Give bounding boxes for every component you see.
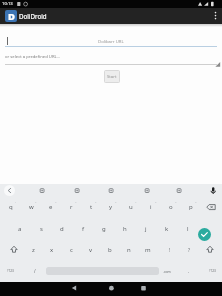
staticText: s <box>40 225 43 233</box>
staticText: ? <box>188 247 190 253</box>
staticText: q <box>9 203 13 211</box>
button[interactable]: ?123 <box>203 265 221 277</box>
button[interactable]: u <box>122 201 140 213</box>
button[interactable]: / <box>26 265 44 277</box>
staticText: z <box>32 246 35 254</box>
button[interactable] <box>204 201 219 213</box>
staticText: ! <box>169 247 171 253</box>
button[interactable]: r <box>62 201 80 213</box>
button[interactable]: w <box>22 201 40 213</box>
staticText: 7 <box>135 200 137 203</box>
staticText: DoliDroid <box>19 12 47 20</box>
button[interactable]: Start <box>104 70 120 83</box>
staticText: o <box>169 203 173 211</box>
staticText: u <box>129 203 133 211</box>
button[interactable]: i <box>142 201 160 213</box>
button[interactable]: q <box>2 201 20 213</box>
button[interactable]: y <box>102 201 120 213</box>
button[interactable] <box>36 185 48 196</box>
button[interactable]: ? <box>180 244 198 256</box>
staticText: p <box>189 203 193 211</box>
staticText: 0 <box>195 200 197 203</box>
staticText: 5 <box>95 200 97 203</box>
staticText: r <box>70 203 73 211</box>
button[interactable]: d <box>53 223 71 235</box>
staticText: h <box>123 225 127 233</box>
button[interactable]: p <box>182 201 200 213</box>
button[interactable]: or select a predefined URL... <box>4 52 218 66</box>
staticText: ?123 <box>209 269 216 273</box>
staticText: 2 <box>35 200 37 203</box>
button[interactable]: b <box>101 244 119 256</box>
staticText: 4 <box>75 200 77 203</box>
staticText: y <box>109 203 113 211</box>
staticText: w <box>29 203 34 211</box>
button[interactable] <box>135 282 151 296</box>
button[interactable]: o <box>162 201 180 213</box>
button[interactable]: g <box>95 223 113 235</box>
staticText: 3 <box>55 200 57 203</box>
staticText: g <box>102 225 106 233</box>
button[interactable]: ! <box>161 244 179 256</box>
staticText: c <box>70 246 73 254</box>
button[interactable] <box>71 185 83 196</box>
staticText: / <box>34 268 36 274</box>
button[interactable]: x <box>43 244 61 256</box>
button[interactable]: k <box>158 223 176 235</box>
staticText: .com <box>163 269 171 274</box>
button[interactable]: c <box>62 244 80 256</box>
button[interactable] <box>202 244 218 256</box>
staticText: d <box>60 225 64 233</box>
button[interactable] <box>4 185 15 196</box>
staticText: . <box>188 268 190 274</box>
staticText: 8 <box>155 200 157 203</box>
button[interactable]: z <box>24 244 42 256</box>
button[interactable]: n <box>120 244 138 256</box>
button[interactable]: h <box>116 223 134 235</box>
staticText: j <box>145 225 147 233</box>
button[interactable]: s <box>32 223 50 235</box>
staticText: ?123 <box>7 269 14 273</box>
staticText: Start <box>107 74 117 80</box>
staticText: n <box>127 246 131 254</box>
button[interactable] <box>207 185 219 196</box>
button[interactable] <box>141 185 153 196</box>
staticText: 10:13 <box>2 1 13 7</box>
staticText: f <box>82 225 85 233</box>
button[interactable]: v <box>82 244 100 256</box>
staticText: t <box>90 203 93 211</box>
button[interactable]: .com <box>158 265 176 277</box>
staticText: k <box>165 225 169 233</box>
staticText: x <box>50 246 54 254</box>
button[interactable] <box>198 228 211 241</box>
button[interactable]: l <box>179 223 197 235</box>
button[interactable] <box>103 282 119 296</box>
staticText: or select a predefined URL... <box>5 54 61 60</box>
button[interactable]: t <box>82 201 100 213</box>
staticText: Dolibarr URL <box>98 38 124 44</box>
button[interactable]: f <box>74 223 92 235</box>
button[interactable] <box>105 185 117 196</box>
staticText: e <box>49 203 53 211</box>
staticText: b <box>108 246 112 254</box>
staticText: v <box>89 246 93 254</box>
button[interactable] <box>173 185 185 196</box>
staticText: 9 <box>175 200 177 203</box>
staticText: 6 <box>115 200 117 203</box>
button[interactable]: a <box>11 223 29 235</box>
button[interactable] <box>6 244 22 256</box>
staticText: a <box>18 225 22 233</box>
button[interactable]: m <box>139 244 157 256</box>
button[interactable] <box>210 9 220 23</box>
button[interactable] <box>66 282 82 296</box>
staticText: 1 <box>15 200 17 203</box>
staticText: i <box>150 203 152 211</box>
staticText: l <box>187 225 189 233</box>
button[interactable]: e <box>42 201 60 213</box>
button[interactable]: ?123 <box>1 265 19 277</box>
staticText: D <box>8 10 15 22</box>
button[interactable]: j <box>137 223 155 235</box>
